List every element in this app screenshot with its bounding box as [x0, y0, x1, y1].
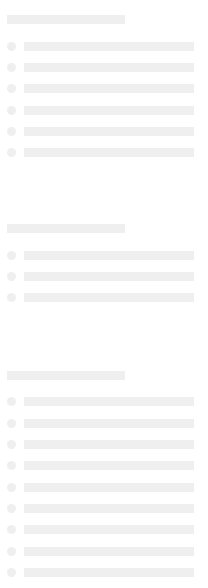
button[interactable]: Loading section title — [0, 15, 208, 24]
button[interactable]: Loading list item — [0, 419, 208, 428]
button[interactable]: Loading list item — [0, 106, 208, 115]
button[interactable]: Loading list item — [0, 440, 208, 449]
button[interactable]: Loading list item — [0, 568, 208, 577]
button[interactable]: Loading list item — [0, 42, 208, 51]
button[interactable]: Loading list item — [0, 461, 208, 470]
button[interactable]: Loading list item — [0, 63, 208, 72]
button[interactable]: Loading list item — [0, 84, 208, 93]
button[interactable]: Loading list item — [0, 504, 208, 513]
button[interactable]: Loading list item — [0, 127, 208, 136]
button[interactable]: Loading section title — [0, 371, 208, 380]
button[interactable]: Loading section title — [0, 224, 208, 233]
button[interactable]: Loading list item — [0, 272, 208, 281]
button[interactable]: Loading list item — [0, 525, 208, 534]
button[interactable]: Loading list item — [0, 483, 208, 492]
button[interactable]: Loading list item — [0, 293, 208, 302]
button[interactable]: Loading list item — [0, 148, 208, 157]
button[interactable]: Loading list item — [0, 251, 208, 260]
button[interactable]: Loading list item — [0, 547, 208, 556]
button[interactable]: Loading list item — [0, 397, 208, 406]
